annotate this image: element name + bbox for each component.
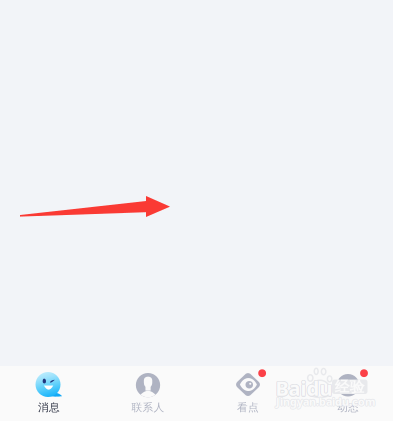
staticText: Baidu [276,375,333,401]
button[interactable]: 联系人 [98,366,198,421]
button[interactable]: 消息 [0,366,99,421]
staticText: Baidu [275,375,332,401]
staticText: Baidu [275,375,332,402]
staticText: Jingyan.baidu.com [275,394,374,408]
staticText: 联系人 [131,401,164,414]
staticText: Jingyan.baidu.com [277,394,376,408]
staticText: 看点 [237,401,259,414]
staticText: Jingyan.baidu.com [277,395,376,409]
staticText: Jingyan.baidu.com [275,395,374,409]
staticText: Baidu [275,376,332,402]
staticText: Jingyan.baidu.com [276,394,375,409]
staticText: 消息 [38,401,60,414]
staticText: Jingyan.baidu.com [275,394,374,409]
staticText: 经验 [335,378,365,396]
staticText: Jingyan.baidu.com [276,395,375,410]
staticText: Jingyan.baidu.com [276,394,375,408]
staticText: Jingyan.baidu.com [277,394,376,409]
staticText: Baidu [275,375,332,401]
staticText: Baidu [275,374,332,401]
staticText: Baidu [276,374,333,401]
staticText: Baidu [276,375,333,402]
button[interactable]: 看点 [198,366,298,421]
staticText: 动态 [337,401,359,414]
staticText: Baidu [275,374,332,401]
button[interactable]: 动态 [298,366,393,421]
